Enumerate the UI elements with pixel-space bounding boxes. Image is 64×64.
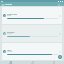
staticText: Sleep [7,49,12,51]
button[interactable]: Search [57,3,60,6]
staticText: 7 h 12 m [7,51,13,53]
staticText: 1.4 / 2 L [7,33,12,35]
staticText: Hydration [7,31,15,33]
staticText: Home [9,63,13,64]
button[interactable]: Stats [22,61,43,64]
staticText: Morning Run [7,13,17,15]
button[interactable]: Home [0,61,22,64]
button[interactable]: More options [60,3,63,6]
button[interactable]: Add activity [58,55,62,59]
staticText: 5.2 km [7,15,12,17]
staticText: Activity [5,3,57,6]
button[interactable]: Sleep [2,43,62,60]
button[interactable]: Hydration [2,25,62,42]
button[interactable]: Morning Run [2,7,62,24]
button[interactable]: Open navigation menu [1,3,4,6]
button[interactable]: Me [43,61,64,64]
staticText: Stats [31,63,34,64]
staticText: 9:41 [1,1,3,2]
